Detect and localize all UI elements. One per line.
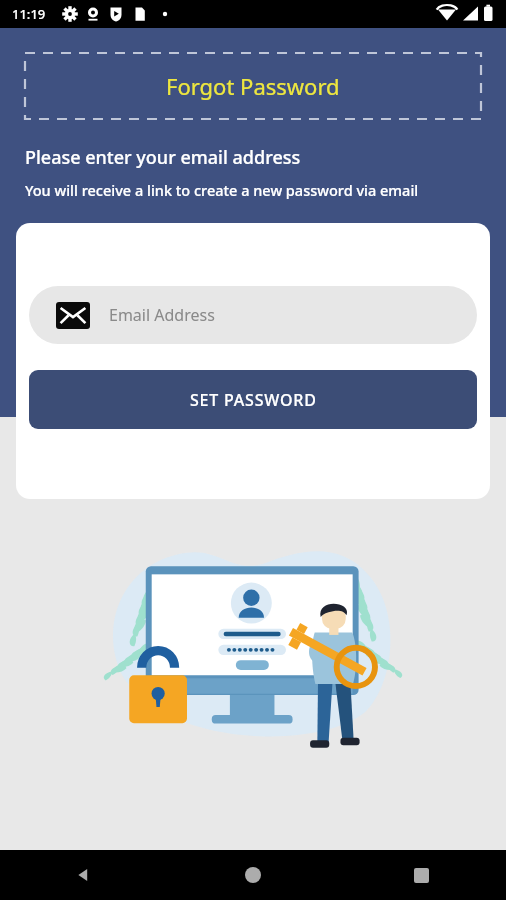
button[interactable]: Back: [0, 850, 168, 900]
button[interactable]: SET PASSWORD: [29, 370, 477, 429]
button[interactable]: Home: [168, 850, 337, 900]
staticText: Please enter your email address: [25, 145, 301, 170]
button[interactable]: Forgot Password: [25, 53, 481, 119]
staticText: Forgot Password: [166, 71, 340, 101]
staticText: 11:19: [12, 5, 46, 23]
button[interactable]: Email Address: [29, 286, 477, 344]
staticText: You will receive a link to create a new …: [25, 180, 419, 200]
staticText: Email Address: [109, 304, 215, 326]
button[interactable]: Recent apps: [337, 850, 506, 900]
staticText: SET PASSWORD: [190, 389, 317, 411]
